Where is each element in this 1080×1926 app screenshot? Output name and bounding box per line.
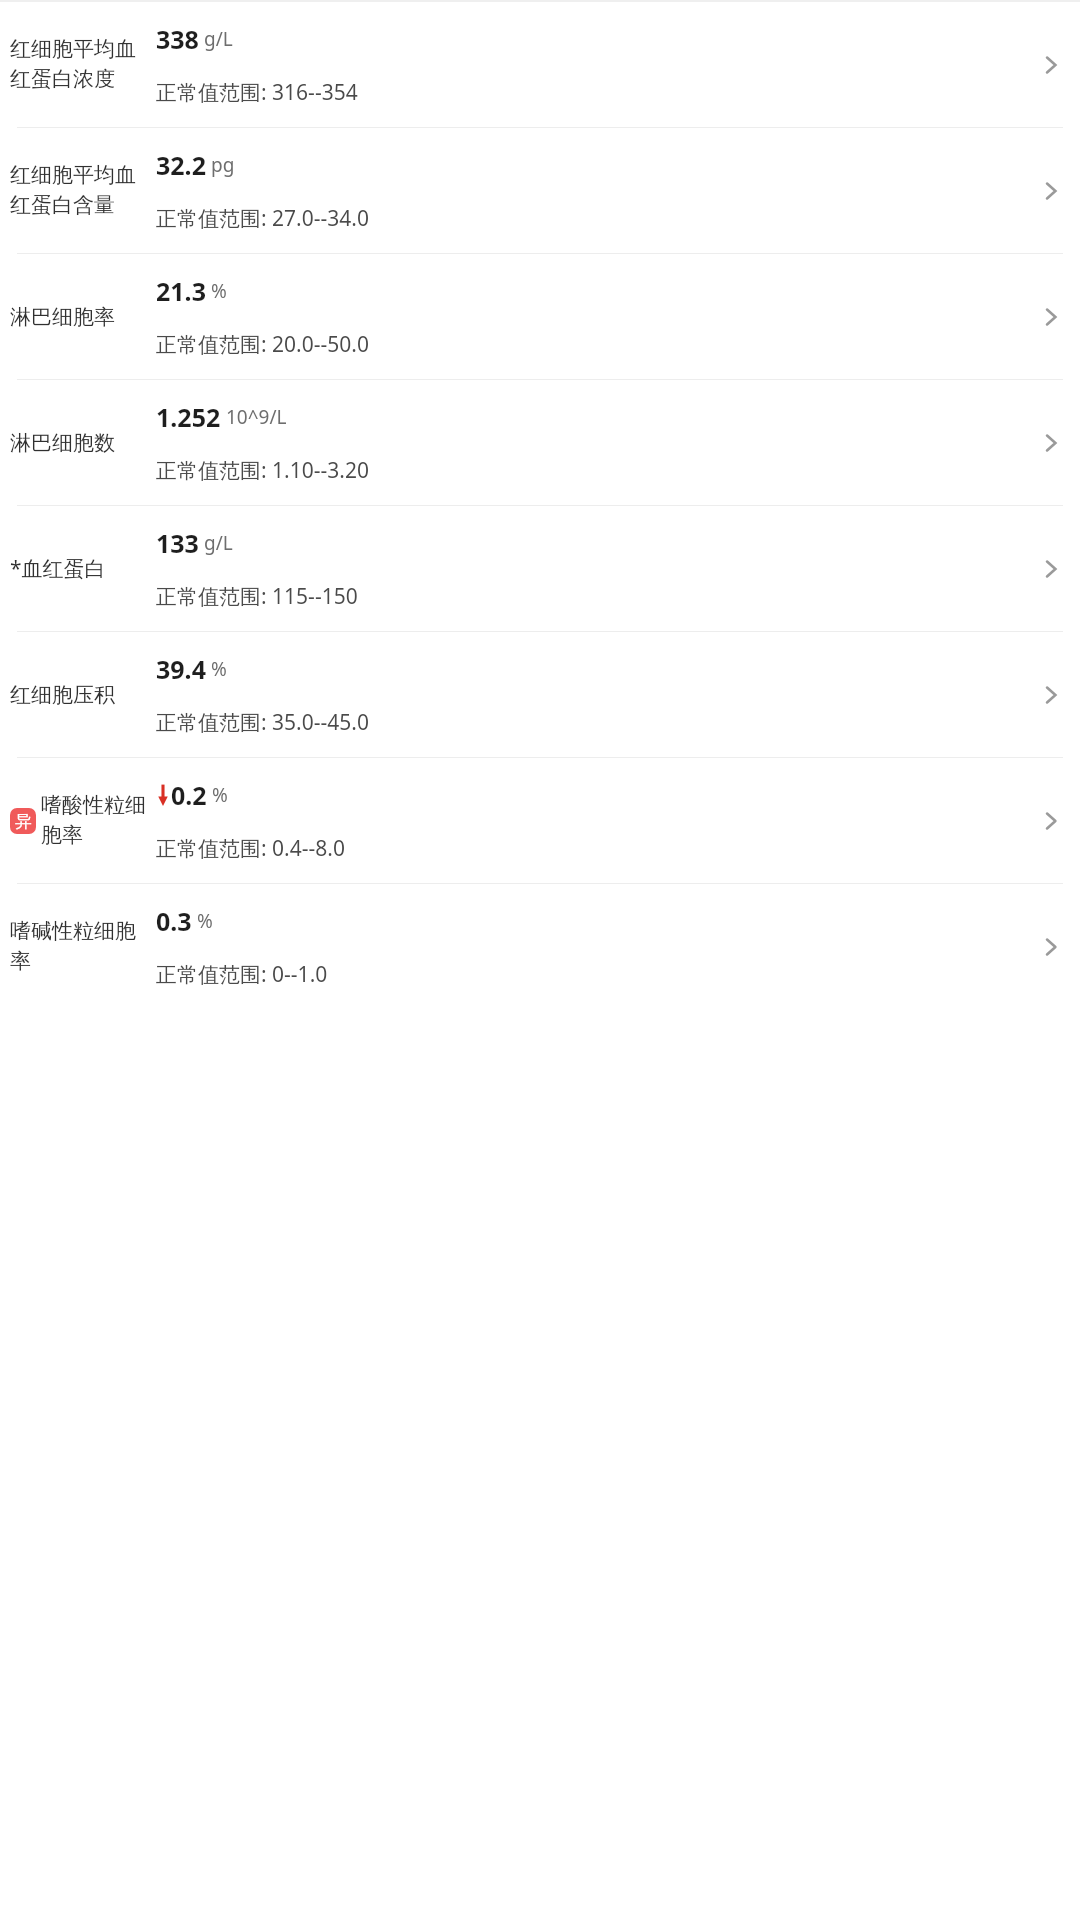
staticText: 正常值范围: 27.0--34.0 xyxy=(156,204,369,233)
staticText: 正常值范围: 1.10--3.20 xyxy=(156,456,369,485)
other: 查看详情 xyxy=(1034,678,1068,712)
button[interactable]: 异 xyxy=(0,758,1080,883)
staticText: 21.3 xyxy=(156,274,206,308)
staticText: % xyxy=(211,278,227,304)
other: 查看详情 xyxy=(1034,48,1068,82)
button[interactable]: 淋巴细胞数 xyxy=(0,380,1080,505)
other: 查看详情 xyxy=(1034,552,1068,586)
staticText: 133 xyxy=(156,526,199,560)
staticText: 嗜碱性粒细胞率 xyxy=(10,918,148,975)
staticText: g/L xyxy=(204,26,233,52)
staticText: *血红蛋白 xyxy=(10,554,106,583)
button[interactable]: 红细胞平均血红蛋白浓度 xyxy=(0,2,1080,127)
staticText: 正常值范围: 35.0--45.0 xyxy=(156,708,369,737)
staticText: 红细胞平均血红蛋白浓度 xyxy=(10,36,148,93)
staticText: 异 xyxy=(15,811,32,832)
staticText: 淋巴细胞数 xyxy=(10,430,115,456)
staticText: 32.2 xyxy=(156,148,206,182)
staticText: 0.2 xyxy=(171,778,207,812)
button[interactable]: 红细胞平均血红蛋白含量 xyxy=(0,128,1080,253)
staticText: 1.252 xyxy=(156,400,221,434)
staticText: g/L xyxy=(204,530,233,556)
staticText: 正常值范围: 115--150 xyxy=(156,582,358,611)
other: 查看详情 xyxy=(1034,804,1068,838)
staticText: 39.4 xyxy=(156,652,206,686)
staticText: 红细胞压积 xyxy=(10,682,115,708)
button[interactable]: 红细胞压积 xyxy=(0,632,1080,757)
staticText: 正常值范围: 316--354 xyxy=(156,78,358,107)
other: 查看详情 xyxy=(1034,930,1068,964)
staticText: % xyxy=(197,908,213,934)
button[interactable]: 嗜碱性粒细胞率 xyxy=(0,884,1080,1009)
button[interactable]: 淋巴细胞率 xyxy=(0,254,1080,379)
staticText: 10^9/L xyxy=(226,404,287,430)
staticText: 淋巴细胞率 xyxy=(10,304,115,330)
other: 查看详情 xyxy=(1034,426,1068,460)
staticText: % xyxy=(212,782,228,808)
staticText: 0.3 xyxy=(156,904,192,938)
staticText: 正常值范围: 20.0--50.0 xyxy=(156,330,369,359)
staticText: 嗜酸性粒细胞率 xyxy=(41,792,148,849)
staticText: 338 xyxy=(156,22,199,56)
other: 查看详情 xyxy=(1034,300,1068,334)
staticText: % xyxy=(211,656,227,682)
staticText: pg xyxy=(211,152,235,178)
staticText: 红细胞平均血红蛋白含量 xyxy=(10,162,148,219)
button[interactable]: *血红蛋白 xyxy=(0,506,1080,631)
other: 查看详情 xyxy=(1034,174,1068,208)
staticText: 正常值范围: 0.4--8.0 xyxy=(156,834,345,863)
staticText: 正常值范围: 0--1.0 xyxy=(156,960,328,989)
